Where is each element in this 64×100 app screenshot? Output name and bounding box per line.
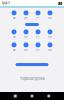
staticText: aa	[13, 48, 15, 52]
staticText: aa	[13, 35, 15, 39]
staticText: dd	[48, 35, 52, 39]
staticText: dd	[48, 16, 52, 20]
button[interactable]: dd	[44, 42, 56, 52]
staticText: dd	[48, 48, 52, 52]
staticText: bb	[24, 35, 28, 39]
staticText: ▮▮	[58, 1, 62, 5]
staticText: 9:41	[2, 1, 10, 5]
button[interactable]: cc	[32, 10, 44, 20]
staticText: cc	[36, 16, 40, 20]
staticText: aa	[13, 16, 15, 20]
button[interactable]: bb	[20, 29, 32, 39]
button[interactable]: bb	[20, 10, 32, 20]
button[interactable]: aa	[8, 42, 20, 52]
button[interactable]: cc	[32, 42, 44, 52]
button[interactable]: cc	[32, 29, 44, 39]
button[interactable]: aa	[8, 10, 20, 20]
staticText: cc	[36, 35, 40, 39]
button[interactable]: dd	[44, 29, 56, 39]
button[interactable]: dd	[44, 10, 56, 20]
staticText: bb	[24, 48, 28, 52]
staticText: bb	[24, 16, 28, 20]
staticText: cc	[36, 48, 40, 52]
button[interactable]: aa	[8, 29, 20, 39]
staticText: Перезагрузка	[19, 76, 44, 81]
button[interactable]: bb	[20, 42, 32, 52]
